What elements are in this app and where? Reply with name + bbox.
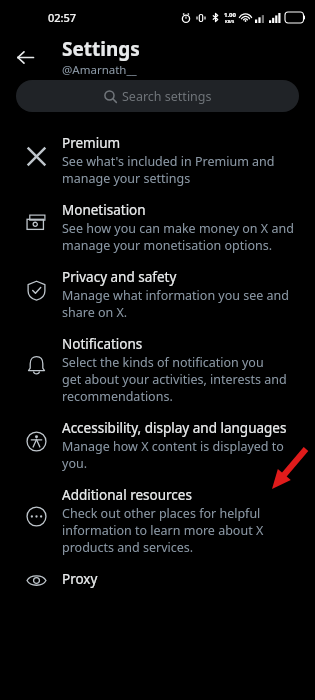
button[interactable]: Back [8, 40, 42, 74]
button[interactable]: Monetisation [0, 193, 315, 260]
staticText: Manage how X content is displayed to you… [62, 438, 284, 472]
staticText: Privacy and safety [62, 268, 177, 286]
button[interactable]: Search settings [16, 80, 299, 112]
staticText: Accessibility, display and languages [62, 419, 287, 437]
staticText: 02:57 [48, 10, 77, 25]
staticText: See what's included in Premium and manag… [62, 153, 275, 187]
button[interactable]: Proxy [0, 562, 315, 597]
button[interactable]: Premium [0, 126, 315, 193]
staticText: Check out other places for helpful infor… [62, 505, 264, 556]
staticText: Search settings [122, 88, 212, 105]
button[interactable]: Additional resources [0, 478, 315, 562]
staticText: See how you can make money on X and mana… [62, 220, 294, 254]
button[interactable]: Notifications [0, 327, 315, 411]
staticText: @Amarnath__ [62, 62, 137, 78]
button[interactable]: Privacy and safety [0, 260, 315, 327]
staticText: Manage what information you see and shar… [62, 287, 290, 321]
staticText: Proxy [62, 570, 98, 588]
button[interactable]: Accessibility, display and languages [0, 411, 315, 478]
staticText: Select the kinds of notification you get… [62, 354, 287, 405]
staticText: Notifications [62, 335, 143, 353]
staticText: KB/S [225, 19, 235, 24]
staticText: Additional resources [62, 486, 192, 504]
staticText: Settings [62, 36, 140, 62]
staticText: Premium [62, 134, 121, 152]
staticText: Monetisation [62, 201, 146, 219]
staticText: 1.00 [224, 11, 236, 19]
